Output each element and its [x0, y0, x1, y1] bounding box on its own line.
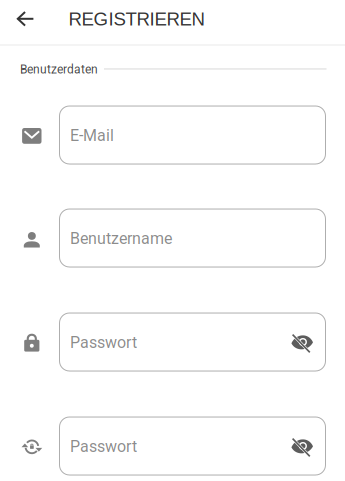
button[interactable]: Show password: [291, 438, 313, 456]
staticText: REGISTRIEREN: [68, 9, 204, 30]
button[interactable]: Show password: [291, 334, 313, 352]
staticText: E-Mail: [70, 126, 114, 145]
button[interactable]: Passwort: [59, 417, 325, 475]
staticText: Benutzername: [70, 229, 172, 248]
button[interactable]: Back: [2, 0, 50, 37]
staticText: Passwort: [70, 437, 137, 456]
button[interactable]: Benutzername: [59, 209, 325, 267]
staticText: Passwort: [70, 333, 137, 352]
button[interactable]: E-Mail: [59, 106, 325, 164]
staticText: Benutzerdaten: [20, 62, 98, 76]
button[interactable]: Passwort: [59, 313, 325, 371]
